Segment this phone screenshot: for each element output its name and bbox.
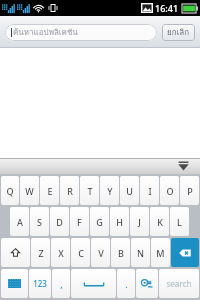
staticText: K (157, 216, 163, 228)
button[interactable]: F (70, 207, 89, 236)
button[interactable]: L (170, 207, 189, 236)
staticText: A (17, 216, 23, 228)
staticText: D (56, 216, 63, 228)
staticText: H (116, 216, 123, 228)
staticText: J (138, 216, 141, 228)
button[interactable]: C (71, 238, 90, 267)
staticText: Y (107, 185, 113, 197)
button[interactable]: U (120, 176, 139, 205)
button[interactable]: B (111, 238, 130, 267)
staticText: 123 (33, 278, 47, 289)
button[interactable]: ค้นหาแอปพลิเคชัน (5, 24, 157, 41)
button[interactable]: W (20, 176, 39, 205)
button[interactable]: D (50, 207, 69, 236)
staticText: B (118, 247, 124, 259)
button[interactable]: , (52, 269, 70, 298)
button[interactable]: A (10, 207, 29, 236)
button[interactable]: G (90, 207, 109, 236)
staticText: M (156, 247, 165, 259)
staticText: L (177, 216, 182, 228)
button[interactable]: S (30, 207, 49, 236)
button[interactable]: 123 (29, 269, 51, 298)
button[interactable]: . (117, 269, 135, 298)
button[interactable]: Keyboard layout (1, 269, 28, 298)
button[interactable]: T (80, 176, 99, 205)
staticText: , (60, 278, 63, 290)
staticText: W (25, 185, 34, 197)
button[interactable]: Z (31, 238, 50, 267)
staticText: O (166, 185, 174, 197)
button[interactable]: V (91, 238, 110, 267)
button[interactable]: J (130, 207, 149, 236)
staticText: I (148, 185, 152, 197)
button[interactable]: ยกเลิก (162, 24, 195, 41)
staticText: C (78, 247, 84, 259)
button[interactable]: K (150, 207, 169, 236)
button[interactable]: O (160, 176, 179, 205)
staticText: F (77, 216, 82, 228)
button[interactable]: search (159, 269, 199, 298)
button[interactable]: Backspace (171, 238, 199, 267)
staticText: ค้นหาแอปพลิเคชัน (13, 26, 78, 39)
button[interactable]: P (180, 176, 199, 205)
staticText: E (47, 185, 53, 197)
staticText: Z (38, 247, 44, 259)
button[interactable]: R (60, 176, 79, 205)
staticText: T (87, 185, 93, 197)
staticText: Q (6, 185, 14, 197)
staticText: ยกเลิก (167, 26, 190, 39)
button[interactable]: M (151, 238, 170, 267)
button[interactable]: Hide keyboard (0, 158, 200, 174)
button[interactable]: Q (1, 176, 19, 205)
staticText: S (37, 216, 42, 228)
button[interactable]: H (110, 207, 129, 236)
button[interactable]: Shift (1, 238, 30, 267)
button[interactable]: E (40, 176, 59, 205)
staticText: V (98, 247, 104, 259)
staticText: P (187, 185, 193, 197)
staticText: G (96, 216, 103, 228)
staticText: X (58, 247, 64, 259)
button[interactable]: I (140, 176, 159, 205)
staticText: R (67, 185, 73, 197)
staticText: N (137, 247, 144, 259)
button[interactable]: Symbols (136, 269, 158, 298)
staticText: 16:41 (155, 2, 179, 14)
button[interactable]: X (51, 238, 70, 267)
staticText: U (126, 185, 133, 197)
button[interactable]: Y (100, 176, 119, 205)
staticText: . (125, 278, 128, 290)
staticText: search (166, 278, 192, 289)
button[interactable]: N (131, 238, 150, 267)
button[interactable]: Space (71, 269, 116, 298)
